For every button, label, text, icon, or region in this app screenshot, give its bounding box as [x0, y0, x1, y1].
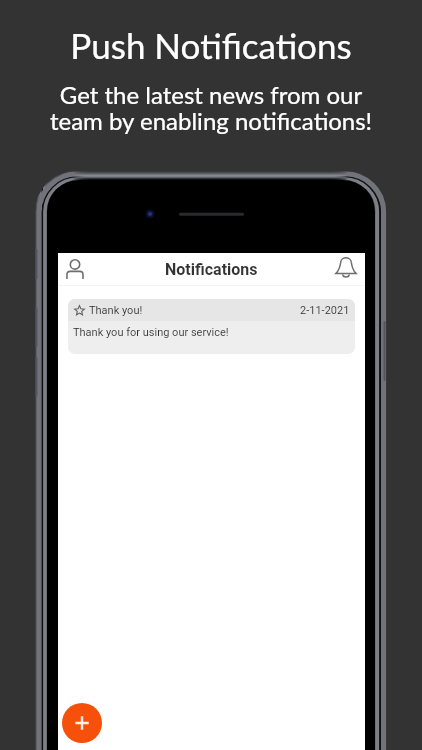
staticText: Thank you! [89, 304, 143, 317]
staticText: Notifications [165, 260, 258, 279]
button[interactable]: Add [62, 703, 102, 743]
button[interactable]: Profile [61, 255, 89, 283]
staticText: Push Notifications [0, 24, 422, 66]
staticText: 2-11-2021 [300, 304, 350, 317]
staticText: Thank you for using our service! [73, 326, 229, 339]
staticText: Get the latest news from our team by ena… [0, 80, 422, 135]
button[interactable]: Notifications [332, 255, 360, 283]
button[interactable]: Thank you! [68, 299, 355, 354]
